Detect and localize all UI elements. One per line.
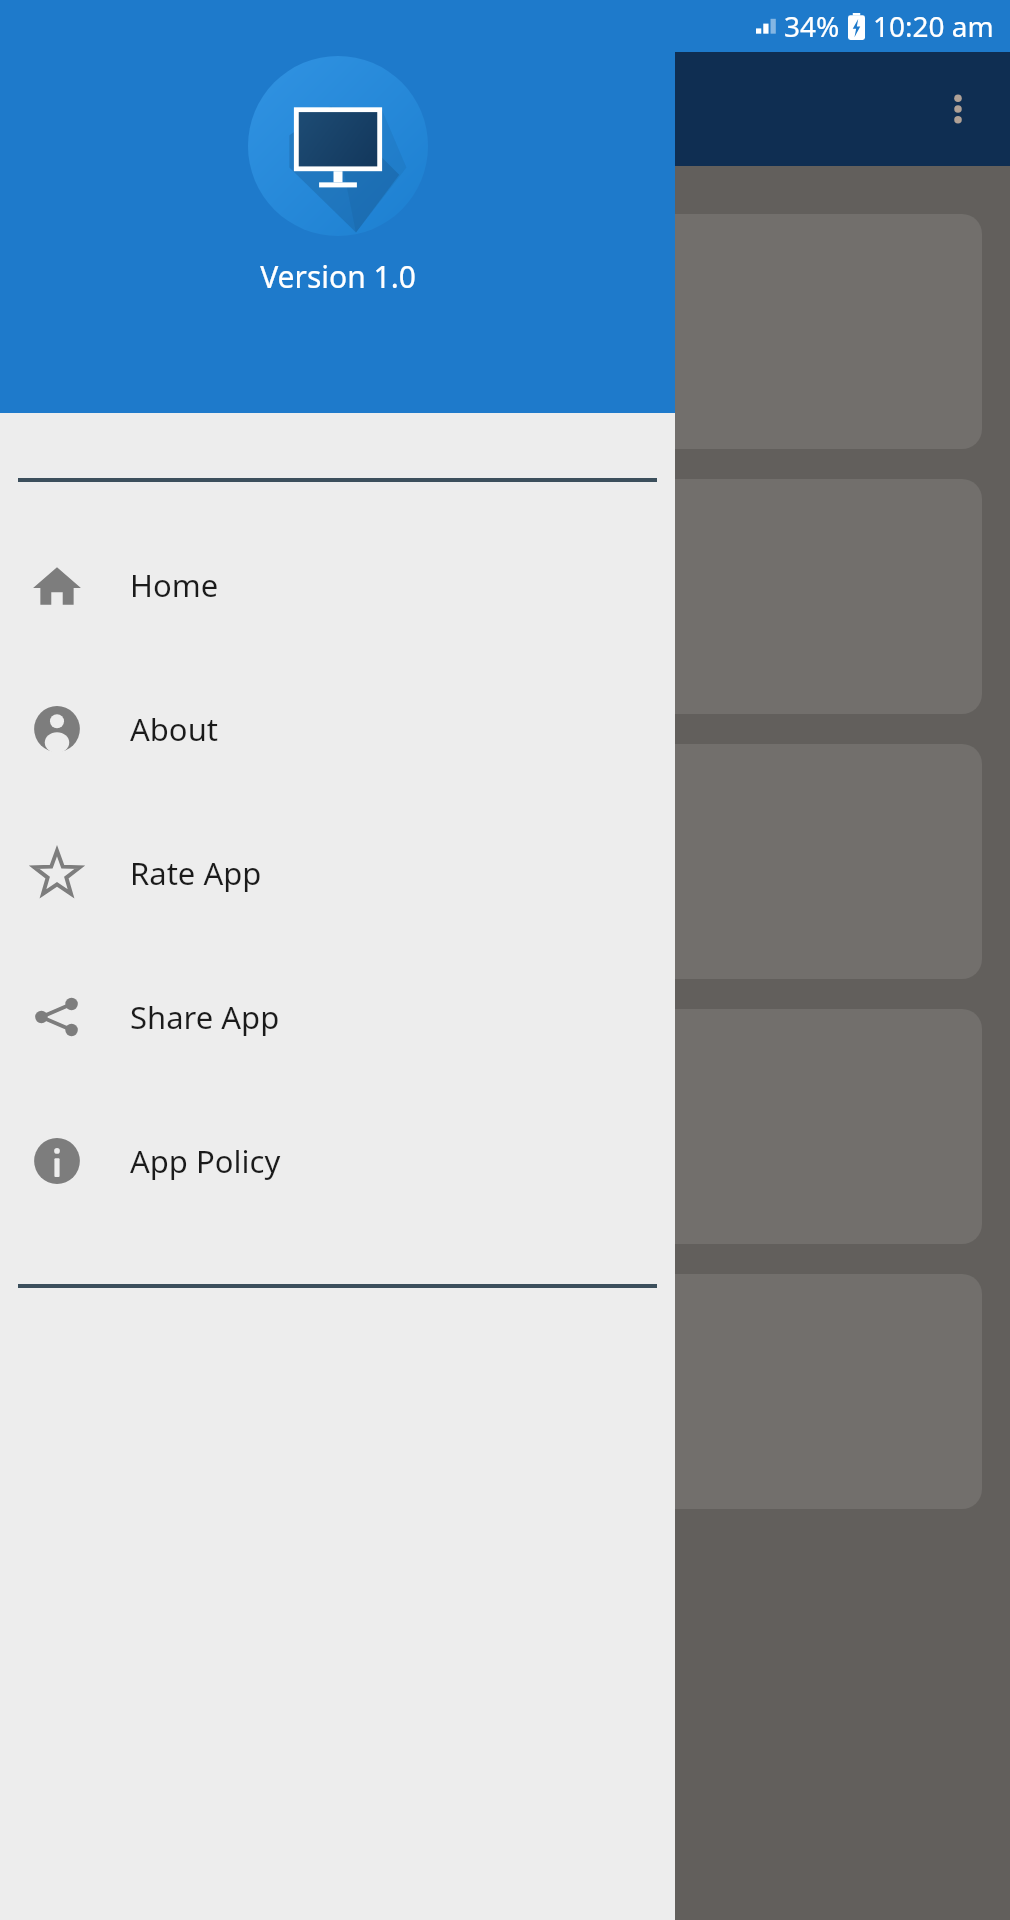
button[interactable]: More options [928, 79, 988, 139]
button[interactable]: About [0, 698, 675, 760]
button[interactable]: Computer Virus [28, 1009, 982, 1244]
staticText: Version 1.0 [260, 256, 416, 297]
staticText: App Policy [130, 1140, 281, 1182]
button[interactable]: Safety Using ICT [28, 744, 982, 979]
staticText: Keyboard and Mouse Skill [74, 595, 308, 687]
staticText: Computer Virus [74, 1125, 340, 1171]
button[interactable]: Home [0, 554, 675, 616]
button[interactable]: Rate App [0, 842, 675, 904]
staticText: 34% [784, 7, 840, 45]
staticText: Home [130, 564, 219, 606]
button[interactable]: Keyboard and Mouse Skill [28, 479, 982, 714]
staticText: Rate App [130, 852, 262, 894]
button[interactable]: Intellectual Property [28, 1274, 982, 1509]
staticText: Safety Using ICT [74, 860, 350, 906]
staticText: About [130, 708, 218, 750]
staticText: 10:20 am [873, 7, 994, 45]
staticText: Introduction on Computer [74, 330, 342, 422]
button[interactable]: Introduction on Computer [28, 214, 982, 449]
button[interactable]: Share App [0, 986, 675, 1048]
button[interactable]: App Policy [0, 1130, 675, 1192]
staticText: Share App [130, 996, 280, 1038]
